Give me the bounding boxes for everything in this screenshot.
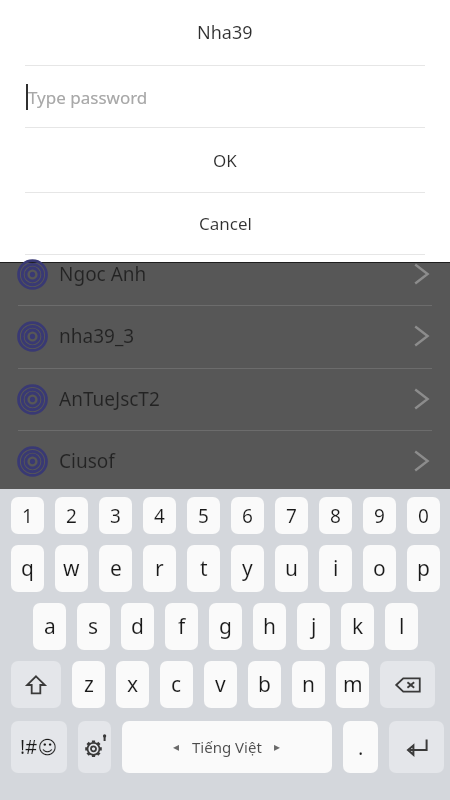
staticText: 6	[242, 503, 253, 529]
staticText: x	[127, 670, 139, 699]
button[interactable]: g	[209, 603, 242, 650]
button[interactable]: .	[343, 721, 378, 773]
staticText: v	[215, 670, 226, 699]
staticText: r	[155, 554, 164, 583]
staticText: m	[343, 670, 363, 699]
button[interactable]: Ciusof	[0, 430, 450, 492]
staticText: h	[263, 612, 276, 641]
button[interactable]: x	[116, 661, 149, 708]
button[interactable]: w	[55, 545, 88, 592]
button[interactable]: 8	[319, 497, 352, 534]
staticText: u	[285, 554, 298, 583]
staticText: 2	[66, 503, 77, 529]
button[interactable]: s	[77, 603, 110, 650]
staticText: 3	[110, 503, 121, 529]
button[interactable]: 0	[407, 497, 440, 534]
button[interactable]: z	[72, 661, 105, 708]
button[interactable]: l	[385, 603, 418, 650]
staticText: Type password	[28, 86, 148, 109]
button[interactable]: d	[121, 603, 154, 650]
button[interactable]: Settings	[78, 721, 111, 773]
button[interactable]: Ngoc Anh	[0, 243, 450, 305]
staticText: f	[178, 612, 186, 641]
staticText: g	[219, 612, 232, 641]
staticText: ▸	[274, 740, 281, 754]
button[interactable]: nha39_3	[0, 305, 450, 367]
button[interactable]: p	[407, 545, 440, 592]
button[interactable]: q	[11, 545, 44, 592]
staticText: 4	[154, 503, 165, 529]
staticText: Ngoc Anh	[59, 261, 147, 287]
button[interactable]: Type password	[0, 66, 450, 127]
staticText: k	[352, 612, 364, 641]
button[interactable]: f	[165, 603, 198, 650]
staticText: d	[131, 612, 144, 641]
staticText: q	[21, 554, 34, 583]
button[interactable]: Enter	[389, 721, 444, 773]
staticText: b	[258, 670, 271, 699]
button[interactable]: o	[363, 545, 396, 592]
button[interactable]: h	[253, 603, 286, 650]
button[interactable]: b	[248, 661, 281, 708]
staticText: OK	[213, 149, 237, 172]
staticText: 1	[22, 503, 33, 529]
staticText: ◂	[173, 740, 180, 754]
staticText: c	[171, 670, 182, 699]
staticText: nha39_3	[59, 323, 135, 349]
staticText: 9	[374, 503, 385, 529]
button[interactable]: !#☺	[11, 721, 67, 773]
button[interactable]: OK	[0, 128, 450, 192]
button[interactable]: 6	[231, 497, 264, 534]
button[interactable]: 3	[99, 497, 132, 534]
button[interactable]: y	[231, 545, 264, 592]
staticText: 7	[286, 503, 297, 529]
button[interactable]: 2	[55, 497, 88, 534]
button[interactable]: Cancel	[0, 193, 450, 254]
staticText: p	[417, 554, 430, 583]
staticText: l	[399, 612, 405, 641]
staticText: 8	[330, 503, 341, 529]
button[interactable]: k	[341, 603, 374, 650]
staticText: i	[333, 554, 339, 583]
staticText: 0	[418, 503, 429, 529]
button[interactable]: 5	[187, 497, 220, 534]
button[interactable]: i	[319, 545, 352, 592]
button[interactable]: m	[336, 661, 369, 708]
button[interactable]: r	[143, 545, 176, 592]
staticText: Nha39	[197, 20, 253, 45]
staticText: .	[358, 734, 364, 761]
staticText: AnTueJscT2	[59, 386, 160, 412]
staticText: n	[302, 670, 315, 699]
staticText: s	[88, 612, 99, 641]
button[interactable]: e	[99, 545, 132, 592]
button[interactable]: AnTueJscT2	[0, 368, 450, 430]
staticText: Tiếng Việt	[192, 737, 262, 757]
button[interactable]: 9	[363, 497, 396, 534]
staticText: y	[242, 554, 253, 583]
button[interactable]: u	[275, 545, 308, 592]
staticText: j	[311, 612, 317, 641]
button[interactable]: Shift	[11, 661, 61, 708]
staticText: Ciusof	[59, 448, 115, 474]
staticText: z	[84, 670, 94, 699]
staticText: e	[110, 554, 122, 583]
button[interactable]: t	[187, 545, 220, 592]
button[interactable]: a	[33, 603, 66, 650]
staticText: a	[44, 612, 56, 641]
button[interactable]: 7	[275, 497, 308, 534]
button[interactable]: n	[292, 661, 325, 708]
staticText: w	[63, 554, 80, 583]
staticText: Cancel	[199, 212, 252, 235]
button[interactable]: Backspace	[380, 661, 435, 708]
staticText: !#☺	[20, 734, 58, 760]
button[interactable]: j	[297, 603, 330, 650]
button[interactable]: c	[160, 661, 193, 708]
staticText: o	[373, 554, 386, 583]
button[interactable]: v	[204, 661, 237, 708]
button[interactable]: 1	[11, 497, 44, 534]
button[interactable]: Tiếng Việt language	[122, 721, 332, 773]
button[interactable]: 4	[143, 497, 176, 534]
staticText: 5	[198, 503, 209, 529]
staticText: t	[200, 554, 208, 583]
